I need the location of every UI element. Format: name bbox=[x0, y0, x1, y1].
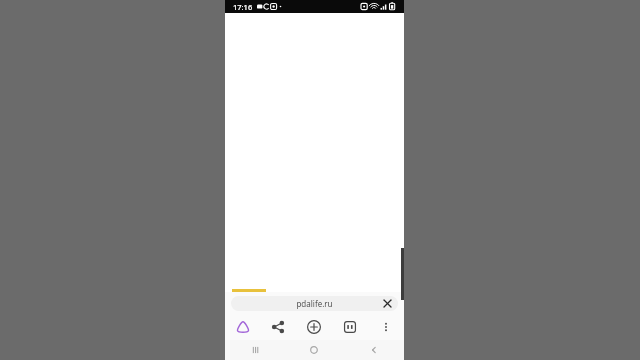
staticText: 17:16 bbox=[233, 2, 253, 12]
button[interactable]: Samsung Internet home bbox=[225, 314, 260, 340]
button[interactable]: More options bbox=[368, 314, 404, 340]
button[interactable]: Home bbox=[284, 340, 344, 360]
button[interactable]: Share bbox=[260, 314, 296, 340]
button[interactable]: Tabs, 65 open bbox=[332, 314, 368, 340]
button[interactable]: New tab bbox=[296, 314, 332, 340]
button[interactable]: Recent apps bbox=[225, 340, 284, 360]
button[interactable]: pdalife.ru bbox=[231, 296, 398, 311]
staticText: pdalife.ru bbox=[249, 298, 380, 309]
button[interactable]: Stop loading bbox=[380, 296, 395, 311]
button[interactable]: Back bbox=[344, 340, 404, 360]
